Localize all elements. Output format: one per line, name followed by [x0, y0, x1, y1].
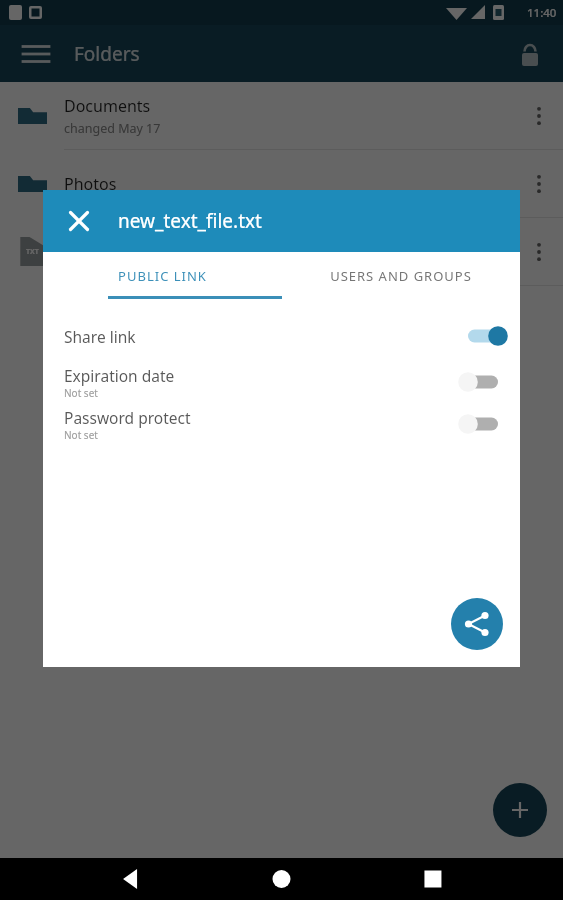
staticText: Password protect: [64, 407, 191, 428]
staticText: new_text_file.txt: [118, 208, 262, 234]
button[interactable]: Expiration date: [43, 363, 520, 401]
staticText: 11:40: [527, 5, 557, 21]
button[interactable]: PUBLIC LINK: [43, 252, 281, 299]
button[interactable]: Share link: [43, 317, 520, 355]
staticText: Documents: [64, 95, 151, 117]
button[interactable]: Password protect: [43, 405, 520, 443]
button[interactable]: More options for new_text_file.txt: [515, 218, 563, 285]
button[interactable]: More options for Photos: [515, 150, 563, 217]
staticText: USERS AND GROUPS: [330, 267, 472, 285]
staticText: Photos: [64, 173, 117, 195]
staticText: Expiration date: [64, 365, 175, 386]
button[interactable]: Open navigation drawer: [17, 35, 55, 73]
button[interactable]: Share: [451, 598, 503, 650]
button[interactable]: Expiration date off: [446, 363, 520, 401]
button[interactable]: Secure connection: [511, 35, 549, 73]
staticText: Not set: [64, 386, 98, 400]
staticText: new_text_file.txt: [64, 231, 186, 253]
button[interactable]: More options for Documents: [515, 82, 563, 149]
button[interactable]: TXT: [0, 218, 563, 285]
button[interactable]: Add: [493, 783, 547, 837]
staticText: Folders: [74, 41, 140, 67]
button[interactable]: Documents: [0, 82, 563, 149]
staticText: Not set: [64, 428, 98, 442]
button[interactable]: USERS AND GROUPS: [281, 252, 520, 299]
button[interactable]: Share link on: [446, 317, 520, 355]
staticText: changed May 17: [64, 120, 161, 137]
button[interactable]: Photos: [0, 150, 563, 217]
staticText: PUBLIC LINK: [118, 267, 207, 285]
button[interactable]: Close: [58, 200, 100, 242]
button[interactable]: Password protect off: [446, 405, 520, 443]
staticText: Share link: [64, 326, 136, 347]
staticText: TXT: [26, 247, 39, 257]
